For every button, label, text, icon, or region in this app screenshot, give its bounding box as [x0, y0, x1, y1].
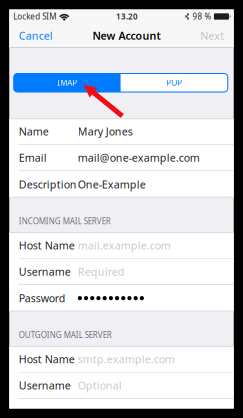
- staticText: smtp.example.com: [78, 352, 175, 366]
- button[interactable]: Host Name: [9, 346, 234, 373]
- staticText: Username: [19, 264, 71, 279]
- staticText: Required: [78, 264, 125, 279]
- button[interactable]: Password: [9, 285, 234, 311]
- staticText: IMAP: [57, 77, 77, 88]
- staticText: INCOMING MAIL SERVER: [19, 216, 111, 226]
- button[interactable]: Name: [9, 118, 234, 145]
- staticText: Username: [19, 378, 71, 393]
- staticText: mail.example.com: [78, 238, 171, 252]
- staticText: Description: [19, 177, 77, 191]
- staticText: One-Example: [78, 177, 146, 191]
- staticText: Password: [19, 291, 66, 305]
- button[interactable]: Username: [9, 259, 234, 285]
- staticText: Name: [19, 124, 49, 138]
- button[interactable]: IMAP: [14, 73, 121, 92]
- staticText: Host Name: [19, 238, 75, 252]
- staticText: Host Name: [19, 352, 75, 366]
- button[interactable]: Cancel: [9, 23, 63, 48]
- staticText: Optional: [78, 378, 122, 393]
- staticText: New Account: [92, 29, 160, 43]
- staticText: POP: [166, 77, 182, 88]
- staticText: Cancel: [19, 29, 53, 43]
- staticText: Email: [19, 151, 47, 165]
- staticText: Mary Jones: [78, 124, 133, 138]
- button[interactable]: [9, 399, 234, 418]
- button[interactable]: Email: [9, 145, 234, 171]
- staticText: Locked SIM: [13, 11, 56, 22]
- button[interactable]: POP: [121, 73, 228, 92]
- staticText: 13.20: [116, 11, 138, 22]
- staticText: 98 %: [192, 11, 211, 22]
- button[interactable]: Next: [190, 23, 234, 48]
- button[interactable]: Host Name: [9, 232, 234, 259]
- staticText: mail@one-example.com: [78, 151, 200, 165]
- staticText: Next: [200, 29, 224, 43]
- button[interactable]: Username: [9, 373, 234, 399]
- button[interactable]: Description: [9, 171, 234, 197]
- staticText: OUTGOING MAIL SERVER: [19, 330, 112, 340]
